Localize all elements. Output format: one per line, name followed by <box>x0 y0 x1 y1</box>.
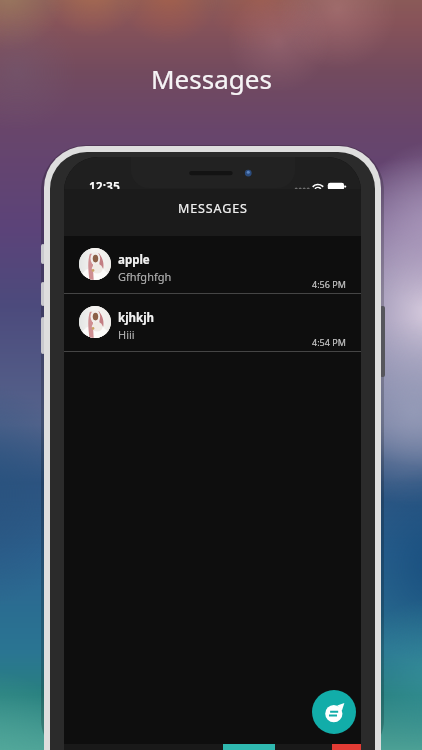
staticText: 4:54 PM <box>312 336 346 348</box>
staticText: kjhkjh <box>118 310 155 326</box>
staticText: Hiii <box>118 327 135 342</box>
staticText: apple <box>118 252 150 268</box>
staticText: MESSAGES <box>178 200 248 217</box>
staticText: Messages <box>151 61 272 96</box>
button[interactable]: New message <box>312 690 356 734</box>
staticText: 12:35 <box>89 178 120 194</box>
staticText: Gfhfghfgh <box>118 269 172 284</box>
button[interactable]: kjhkjh <box>64 294 361 352</box>
staticText: 4:56 PM <box>312 278 346 290</box>
button[interactable]: apple <box>64 236 361 294</box>
